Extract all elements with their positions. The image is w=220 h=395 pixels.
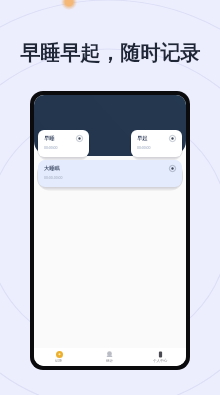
staticText: 早起 <box>137 135 148 142</box>
staticText: 00:00:00 <box>137 145 151 150</box>
staticText: 00:00-00:00 <box>44 175 63 180</box>
staticText: 记录 <box>55 359 63 364</box>
button[interactable]: 早起 <box>131 130 182 157</box>
staticText: 个人中心 <box>153 359 168 364</box>
button[interactable]: 统计 <box>84 348 135 366</box>
button[interactable]: 早睡 <box>38 130 89 157</box>
button[interactable]: 大睡眠 <box>38 160 182 187</box>
staticText: 00:00:00 <box>44 145 58 150</box>
staticText: 统计 <box>106 359 114 364</box>
button[interactable]: Start recording <box>75 134 84 143</box>
staticText: 大睡眠 <box>44 165 60 172</box>
button[interactable]: Start recording <box>168 164 177 173</box>
button[interactable]: 个人中心 <box>135 348 186 366</box>
staticText: 早睡早起，随时记录 <box>20 41 200 66</box>
button[interactable]: Start recording <box>168 134 177 143</box>
staticText: 早睡 <box>44 135 55 142</box>
button[interactable]: 记录 <box>34 348 84 366</box>
